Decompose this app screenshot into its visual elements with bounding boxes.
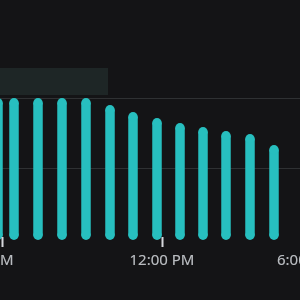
button[interactable]: Activity bar chart: [0, 0, 300, 300]
